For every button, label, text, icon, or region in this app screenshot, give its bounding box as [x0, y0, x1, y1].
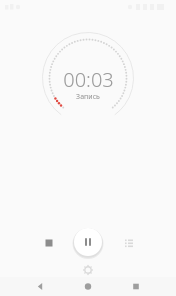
button[interactable]: Recordings list: [118, 232, 140, 254]
button[interactable]: Home: [76, 277, 100, 296]
button[interactable]: Pause: [74, 228, 102, 256]
button[interactable]: Settings: [78, 260, 98, 280]
staticText: Запись: [76, 92, 100, 102]
button[interactable]: Stop: [38, 232, 60, 254]
staticText: 00:03: [63, 66, 114, 93]
button[interactable]: Back: [28, 277, 52, 296]
button[interactable]: Recents: [124, 277, 148, 296]
